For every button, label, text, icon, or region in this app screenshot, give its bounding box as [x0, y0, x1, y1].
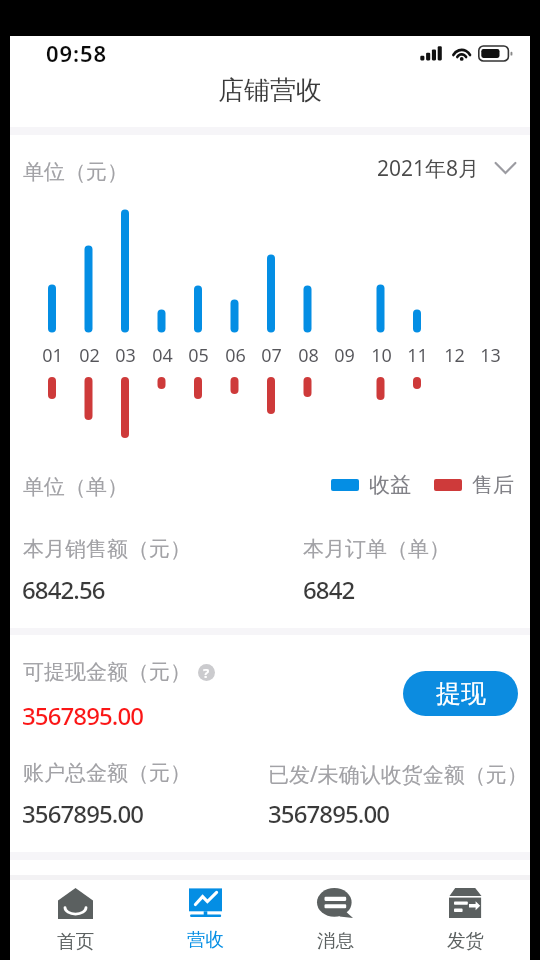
staticText: 本月订单（单） — [303, 536, 450, 562]
staticText: 6842.56 — [22, 573, 105, 606]
staticText: 04 — [152, 343, 173, 368]
staticText: 11 — [407, 343, 428, 368]
staticText: 09:58 — [46, 38, 107, 68]
staticText: 06 — [225, 343, 246, 368]
staticText: 3567895.00 — [22, 699, 144, 732]
staticText: 单位（单） — [23, 474, 128, 500]
staticText: 09 — [334, 343, 355, 368]
other: 发货 — [449, 888, 482, 918]
staticText: 10 — [371, 343, 392, 368]
staticText: 单位（元） — [23, 159, 128, 185]
staticText: 07 — [261, 343, 282, 368]
staticText: 6842 — [303, 573, 355, 606]
staticText: 营收 — [187, 928, 224, 951]
staticText: 03 — [115, 343, 136, 368]
button[interactable]: 提现 — [403, 671, 518, 716]
staticText: 提现 — [436, 678, 486, 709]
staticText: 13 — [480, 343, 501, 368]
staticText: 01 — [42, 343, 63, 368]
staticText: 2021年8月 — [377, 154, 480, 183]
staticText: 账户总金额（元） — [23, 760, 191, 786]
button[interactable]: 首页 — [10, 876, 140, 960]
staticText: 05 — [188, 343, 209, 368]
staticText: 12 — [444, 343, 465, 368]
staticText: 首页 — [57, 930, 94, 953]
staticText: 本月销售额（元） — [23, 536, 191, 562]
button[interactable]: 消息 — [270, 876, 400, 960]
button[interactable]: 2021年8月 — [377, 152, 517, 184]
staticText: 发货 — [447, 929, 484, 952]
button[interactable]: 发货 — [400, 876, 530, 960]
other: 说明 — [198, 664, 215, 681]
button[interactable]: 营收 — [140, 876, 270, 960]
staticText: 收益 — [369, 472, 411, 498]
staticText: 可提现金额（元） — [23, 659, 191, 685]
staticText: 3567895.00 — [22, 797, 144, 830]
other: 消息 — [317, 888, 353, 918]
staticText: 3567895.00 — [268, 797, 390, 830]
staticText: 02 — [79, 343, 100, 368]
other: 首页 — [58, 888, 93, 919]
staticText: 08 — [298, 343, 319, 368]
staticText: 店铺营收 — [218, 74, 322, 107]
staticText: 已发/未确认收货金额（元） — [268, 760, 528, 789]
staticText: 消息 — [317, 929, 354, 952]
staticText: 售后 — [472, 472, 514, 498]
staticText: ? — [203, 664, 210, 681]
other: 营收 — [189, 888, 222, 917]
